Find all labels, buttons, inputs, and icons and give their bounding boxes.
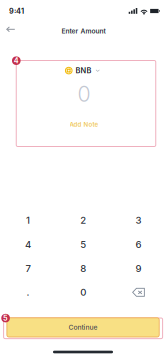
button[interactable]: Continue (7, 318, 159, 337)
button[interactable]: 5 (59, 232, 107, 256)
button[interactable]: 4 (4, 232, 52, 256)
button[interactable]: Add Note (64, 118, 103, 131)
staticText: Add Note (69, 121, 98, 128)
button[interactable]: 0 (59, 280, 107, 304)
staticText: 9 (135, 263, 141, 274)
staticText: 5 (3, 314, 8, 322)
button[interactable]: . (4, 280, 52, 304)
staticText: Continue (68, 323, 97, 331)
staticText: 4 (14, 56, 19, 65)
button[interactable]: BNB (62, 64, 102, 77)
staticText: 2 (80, 214, 86, 226)
button[interactable]: 8 (59, 256, 107, 280)
staticText: 7 (25, 263, 30, 274)
button[interactable]: 9 (114, 256, 162, 280)
staticText: 1 (26, 214, 30, 226)
button[interactable]: 1 (4, 208, 52, 232)
button[interactable]: 7 (4, 256, 52, 280)
staticText: 6 (135, 239, 141, 250)
button[interactable]: 3 (114, 208, 162, 232)
button[interactable]: 2 (59, 208, 107, 232)
button[interactable]: 6 (114, 232, 162, 256)
staticText: 4 (25, 239, 31, 250)
staticText: 0 (77, 81, 90, 107)
staticText: 5 (80, 239, 86, 250)
staticText: 8 (80, 263, 86, 274)
staticText: Enter Amount (61, 27, 105, 35)
staticText: 0 (80, 286, 86, 298)
staticText: 3 (135, 214, 141, 226)
button[interactable]: Back (0, 19, 21, 39)
staticText: BNB (75, 66, 91, 75)
staticText: 9:41 (9, 7, 24, 15)
button[interactable]: Delete (114, 280, 162, 304)
staticText: . (26, 286, 29, 298)
